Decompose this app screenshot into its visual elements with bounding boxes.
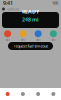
staticText: request fuel timeout <box>13 43 47 49</box>
button[interactable]: Tab <box>30 92 46 96</box>
staticText: abc <box>36 38 40 42</box>
staticText: READY <box>22 8 39 15</box>
button[interactable]: Tab <box>15 92 30 96</box>
button[interactable]: abc <box>46 30 61 42</box>
staticText: abc <box>6 38 10 42</box>
staticText: 100 <box>52 0 58 6</box>
staticText: 9:41 <box>3 0 13 7</box>
button[interactable]: abc <box>0 30 15 42</box>
button[interactable]: abc <box>30 30 46 42</box>
button[interactable]: abc <box>15 30 30 42</box>
staticText: abc <box>21 38 25 42</box>
staticText: 248 mi <box>22 16 39 23</box>
button[interactable]: Tab <box>46 92 61 96</box>
staticText: abc <box>51 38 55 42</box>
button[interactable]: Tab <box>0 92 15 96</box>
staticText: vehicle <box>7 6 19 12</box>
